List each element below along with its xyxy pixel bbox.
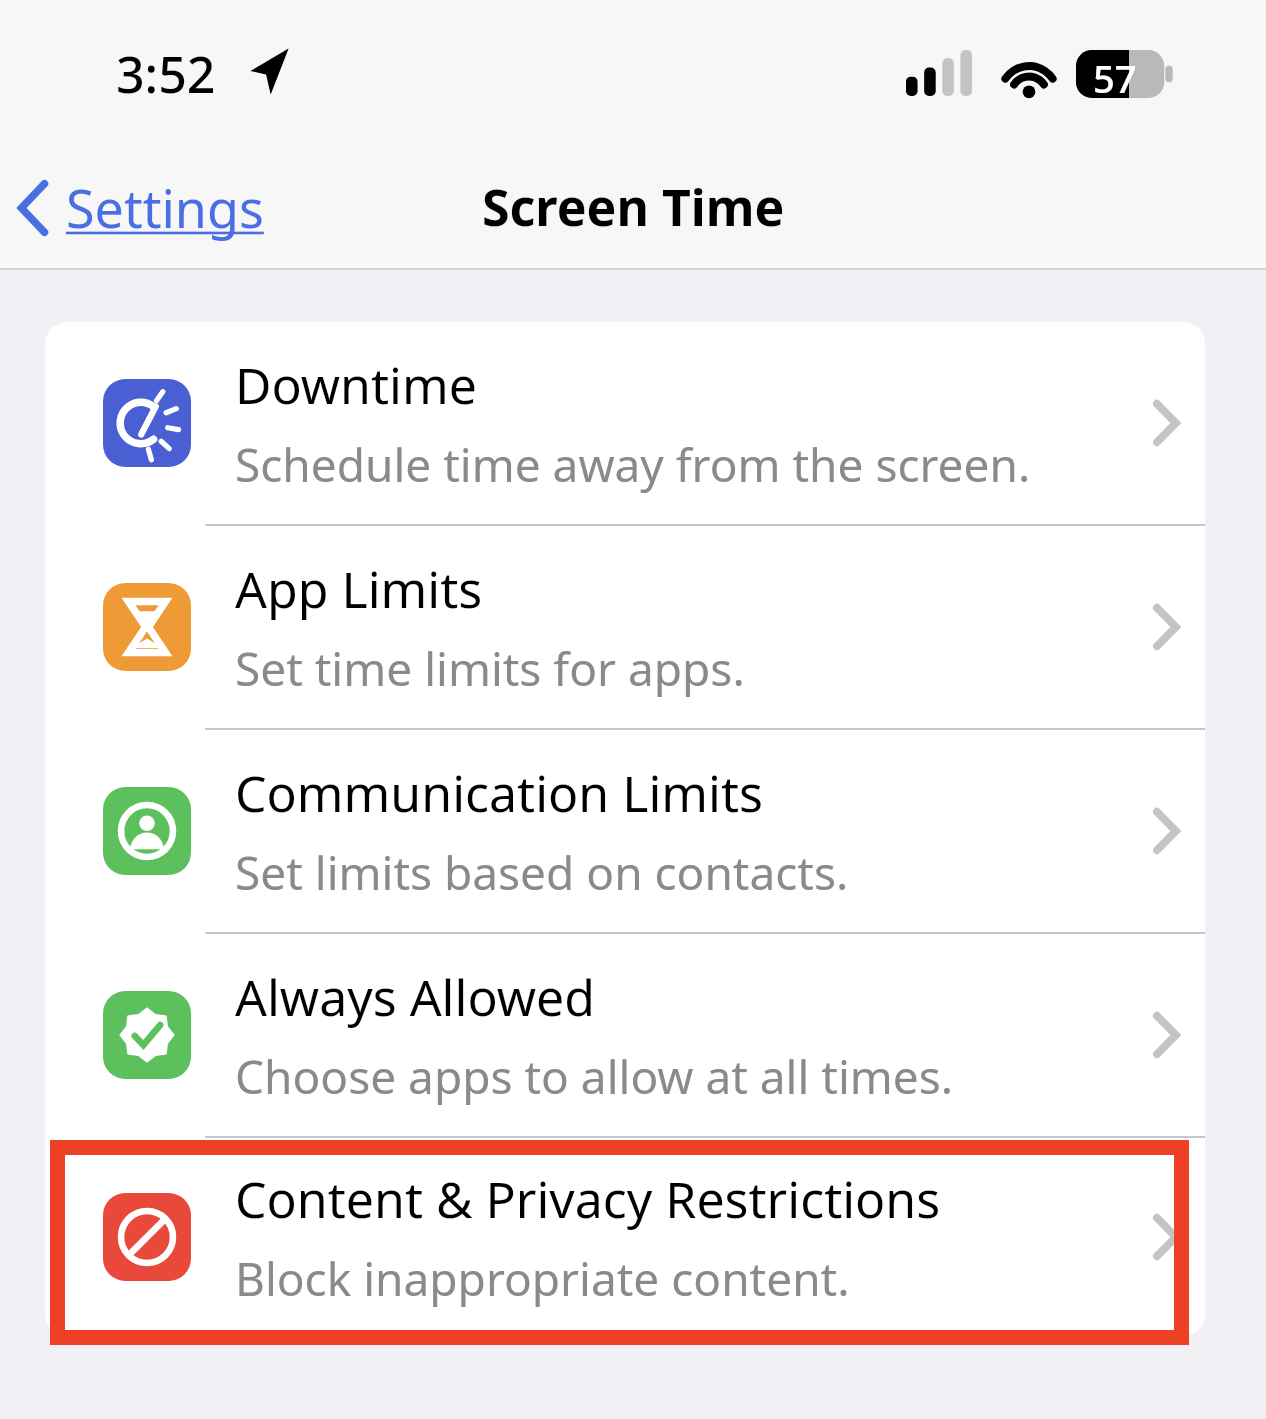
staticText: Block inappropriate content. [235, 1247, 850, 1310]
staticText: Settings [66, 172, 264, 243]
staticText: App Limits [235, 555, 483, 623]
other: Communication Limits [103, 787, 191, 875]
other: Back [16, 179, 50, 237]
other: App Limits [103, 583, 191, 671]
button[interactable]: Back [10, 164, 270, 251]
button[interactable]: Content and Privacy Restrictions [45, 1138, 1205, 1336]
button[interactable]: Downtime [45, 322, 1205, 524]
other: Content and Privacy Restrictions [103, 1193, 191, 1281]
button[interactable]: Always Allowed [45, 934, 1205, 1136]
staticText: Schedule time away from the screen. [235, 433, 1031, 496]
staticText: Content & Privacy Restrictions [235, 1165, 941, 1233]
button[interactable]: Communication Limits [45, 730, 1205, 932]
staticText: Always Allowed [235, 963, 595, 1031]
staticText: Downtime [235, 351, 477, 419]
staticText: 57 [1093, 52, 1137, 104]
button[interactable]: App Limits [45, 526, 1205, 728]
staticText: Choose apps to allow at all times. [235, 1045, 954, 1108]
staticText: 3:52 [116, 40, 216, 108]
other: Always Allowed [103, 991, 191, 1079]
staticText: Screen Time [482, 173, 785, 241]
staticText: Set limits based on contacts. [235, 841, 849, 904]
other: Downtime [103, 379, 191, 467]
staticText: Communication Limits [235, 759, 763, 827]
staticText: Set time limits for apps. [235, 637, 745, 700]
